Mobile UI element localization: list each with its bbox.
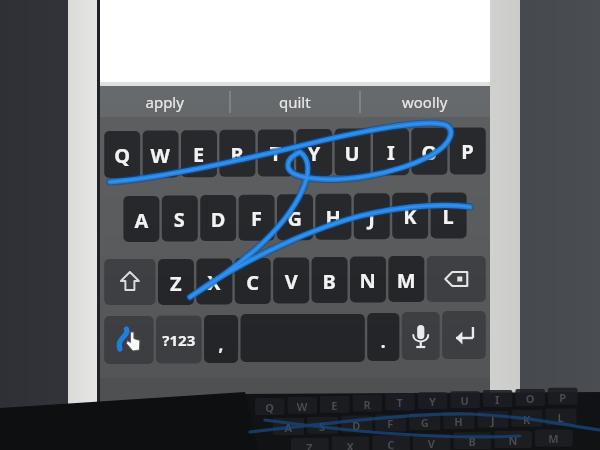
button[interactable]: Swipe keyboard demo bbox=[0, 0, 600, 450]
